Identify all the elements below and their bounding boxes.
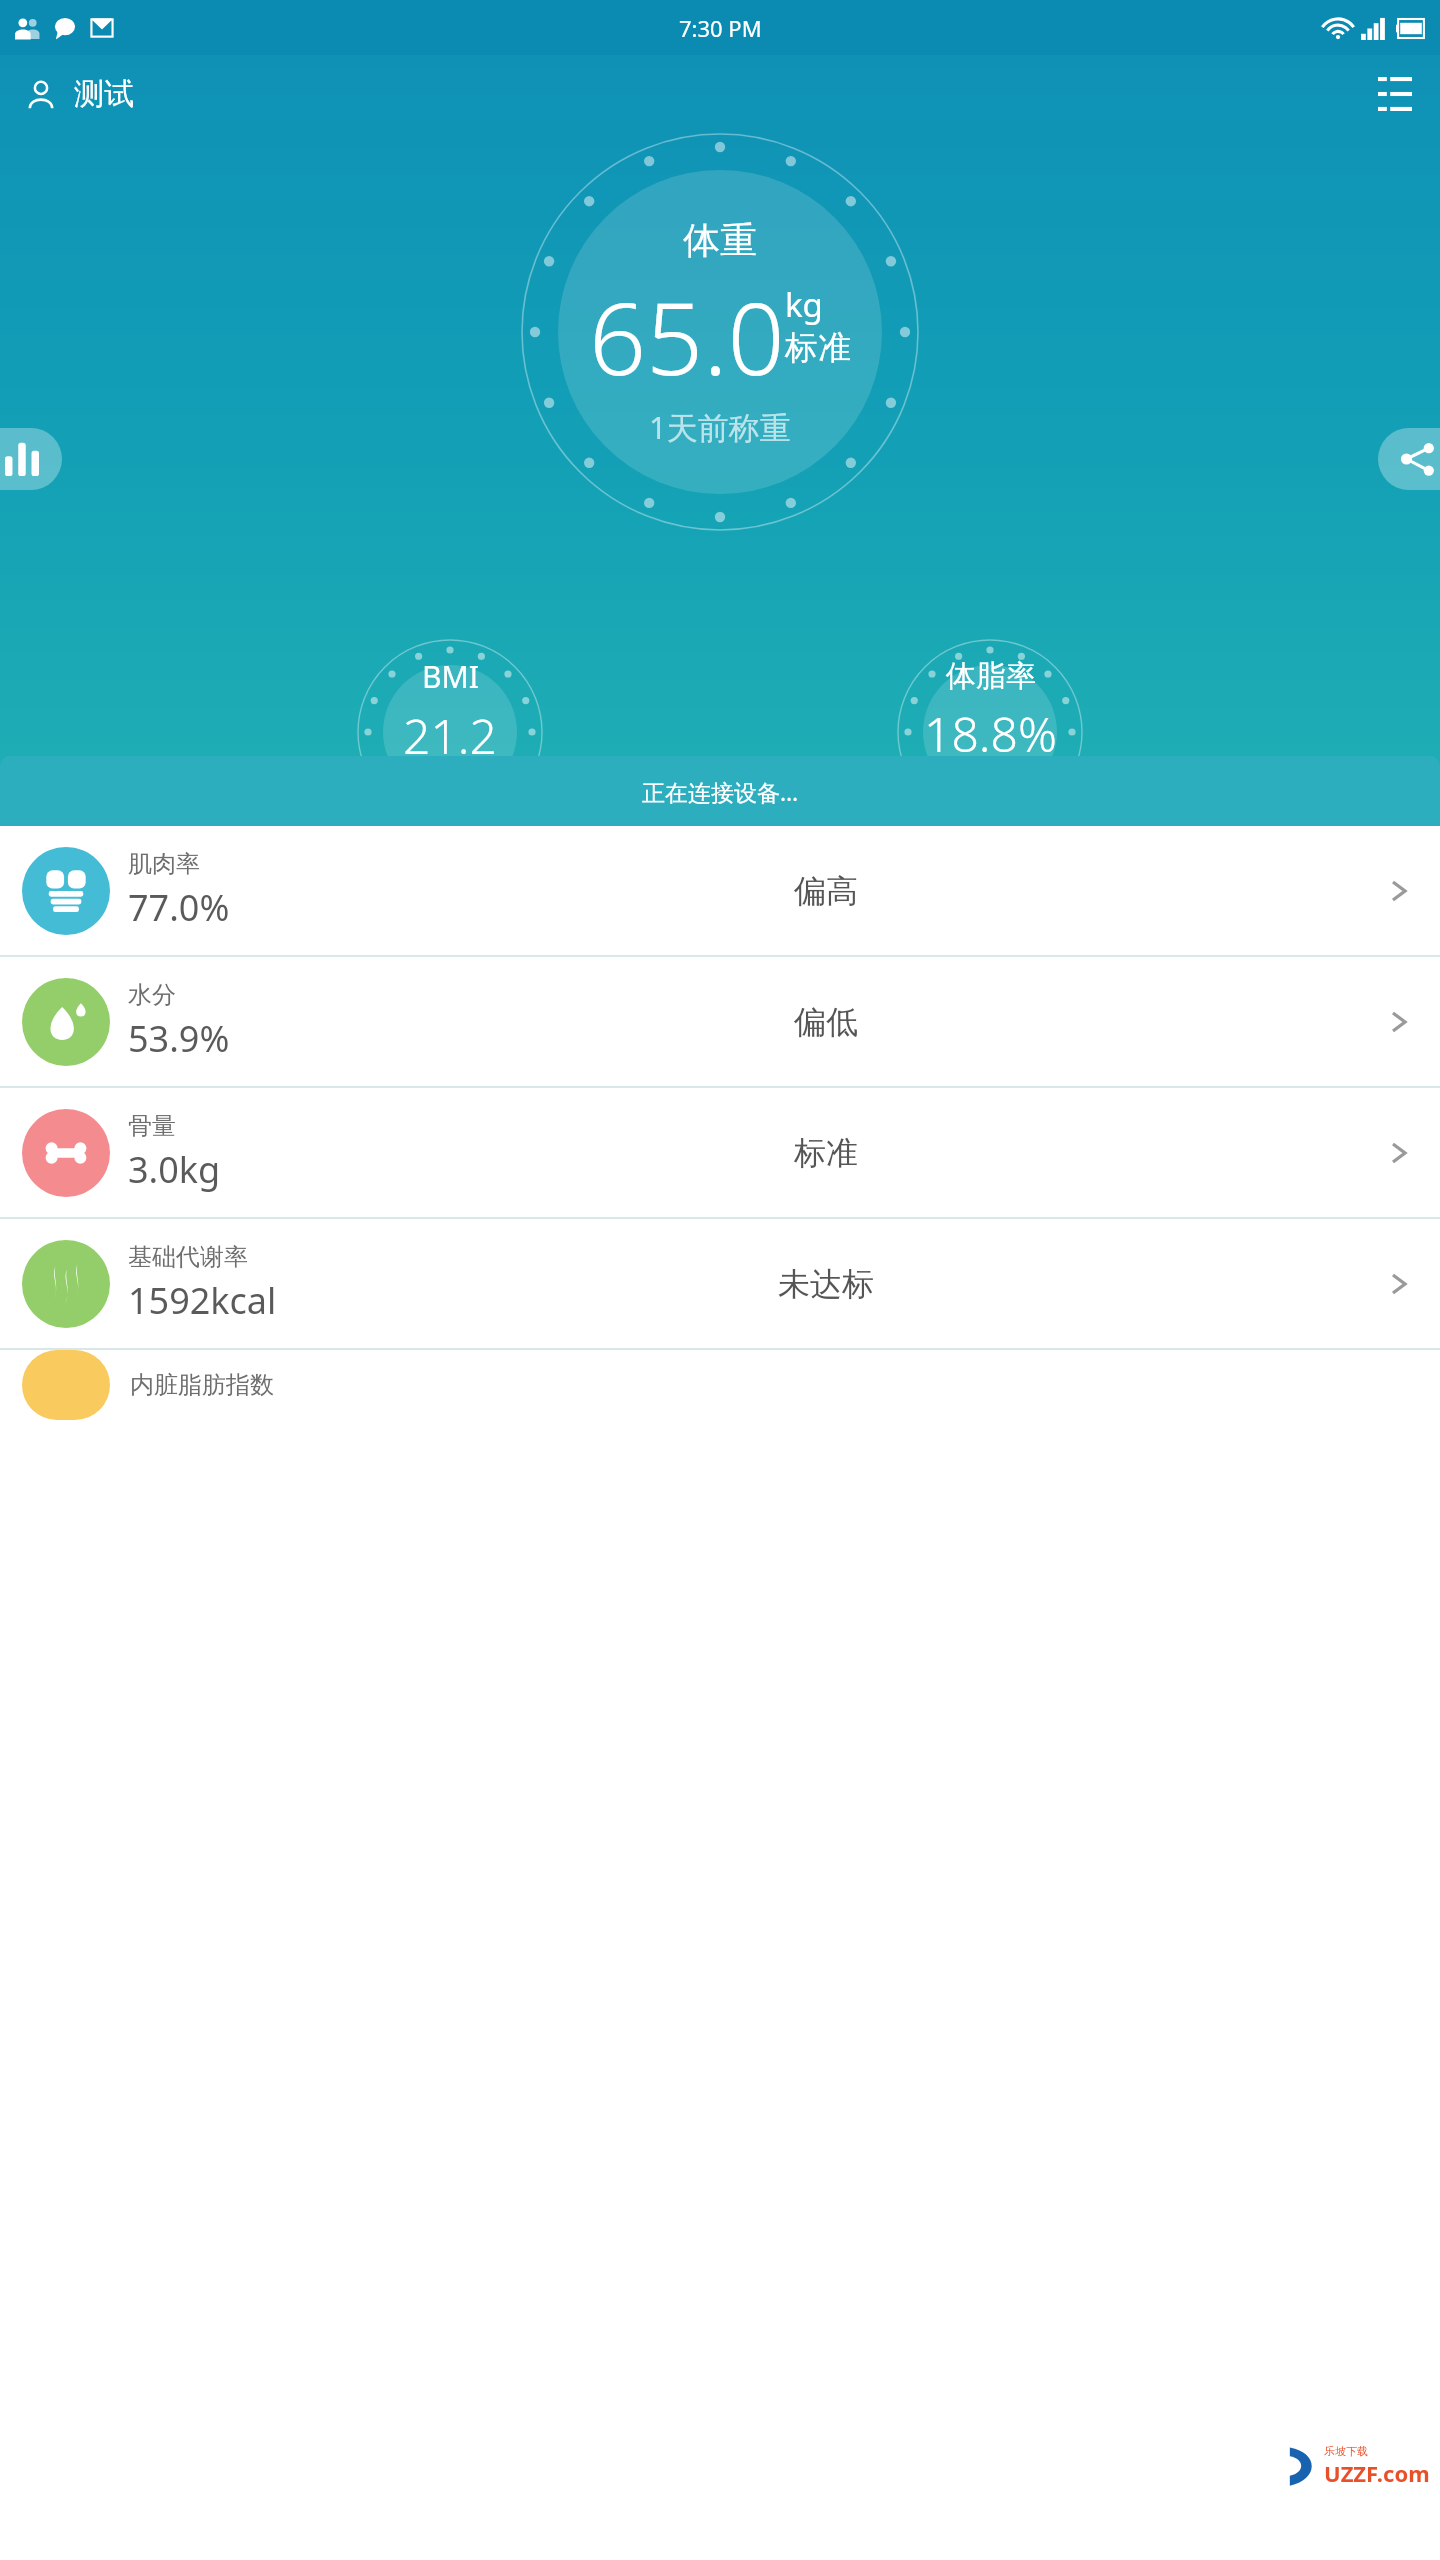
staticText: 21.2 — [403, 703, 497, 768]
staticText: 18.8% — [924, 701, 1057, 766]
staticText: 77.0% — [128, 883, 230, 932]
staticText: 肌肉率 — [128, 849, 200, 879]
staticText: 测试 — [74, 75, 134, 113]
staticText: 偏高 — [794, 871, 858, 911]
staticText: 内脏脂肪指数 — [130, 1370, 274, 1400]
staticText: 65.0 — [589, 268, 785, 404]
staticText: kg — [785, 282, 823, 327]
staticText: 标准 — [785, 327, 851, 369]
button[interactable]: 基础代谢率 — [0, 1219, 1440, 1348]
staticText: 1天前称重 — [649, 406, 791, 448]
staticText: 偏低 — [794, 1002, 858, 1042]
button[interactable]: 正在连接设备… — [0, 756, 1440, 826]
staticText: 3.0kg — [128, 1145, 221, 1194]
button[interactable]: 水分 — [0, 957, 1440, 1086]
button[interactable]: BMI — [332, 638, 568, 826]
staticText: 乐坡下载 — [1324, 2444, 1368, 2458]
staticText: 基础代谢率 — [128, 1242, 248, 1272]
staticText: 体脂率 — [946, 657, 1036, 695]
button[interactable]: 内脏脂肪指数 — [0, 1350, 1440, 1420]
button[interactable]: 体重 — [520, 132, 920, 532]
staticText: 骨量 — [128, 1111, 176, 1141]
staticText: 正在连接设备… — [642, 776, 799, 807]
button[interactable]: 测试 — [16, 69, 142, 119]
button[interactable]: 骨量 — [0, 1088, 1440, 1217]
staticText: 1592kcal — [128, 1276, 277, 1325]
staticText: 53.9% — [128, 1014, 230, 1063]
staticText: 体重 — [683, 217, 757, 264]
staticText: 标准 — [794, 1133, 858, 1173]
staticText: BMI — [422, 656, 479, 697]
button[interactable]: 体脂率 — [872, 638, 1108, 826]
button[interactable]: Menu — [1364, 63, 1426, 125]
button[interactable]: 肌肉率 — [0, 826, 1440, 955]
staticText: 7:30 PM — [679, 13, 762, 43]
staticText: UZZF.com — [1324, 2458, 1430, 2488]
staticText: 水分 — [128, 980, 176, 1010]
button[interactable]: Share — [1378, 428, 1440, 490]
staticText: 未达标 — [778, 1264, 874, 1304]
button[interactable]: Trends chart — [0, 428, 62, 490]
